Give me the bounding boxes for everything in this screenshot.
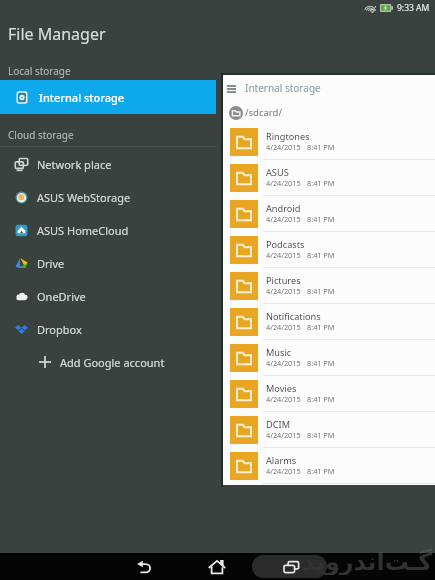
staticText: Internal storage: [245, 81, 321, 95]
staticText: File Manager: [8, 23, 106, 45]
staticText: 4/24/2015: [266, 358, 301, 368]
staticText: 8:41 PM: [307, 214, 335, 224]
staticText: 8:41 PM: [307, 322, 335, 332]
staticText: 8:41 PM: [307, 394, 335, 404]
staticText: 4/24/2015: [266, 394, 301, 404]
staticText: OneDrive: [37, 289, 86, 304]
button[interactable]: ASUS WebStorage: [0, 180, 223, 214]
staticText: Pictures: [266, 274, 301, 287]
staticText: 4/24/2015: [266, 250, 301, 260]
staticText: Network place: [37, 157, 112, 172]
button[interactable]: Add Google account: [0, 345, 223, 379]
staticText: 9:33 AM: [397, 2, 430, 14]
button[interactable]: Podcasts: [223, 232, 435, 268]
staticText: /sdcard/: [245, 106, 282, 119]
staticText: Notifications: [266, 310, 321, 323]
staticText: 8:41 PM: [307, 250, 335, 260]
button[interactable]: Notifications: [223, 304, 435, 340]
staticText: 8:41 PM: [307, 358, 335, 368]
staticText: 4/24/2015: [266, 286, 301, 296]
button[interactable]: Back: [126, 553, 162, 580]
staticText: ASUS HomeCloud: [37, 223, 129, 238]
staticText: ASUS: [266, 166, 289, 179]
button[interactable]: Drive: [0, 246, 223, 280]
button[interactable]: Network place: [0, 147, 223, 181]
button[interactable]: Ringtones: [223, 124, 435, 160]
staticText: Ringtones: [266, 130, 310, 143]
button[interactable]: Internal storage: [0, 80, 216, 114]
staticText: 4/24/2015: [266, 322, 301, 332]
staticText: DCIM: [266, 418, 290, 431]
button[interactable]: Android: [223, 196, 435, 232]
staticText: 4/24/2015: [266, 142, 301, 152]
button[interactable]: Recent apps: [273, 553, 309, 580]
staticText: Local storage: [8, 64, 71, 78]
staticText: 4/24/2015: [266, 178, 301, 188]
staticText: Music: [266, 346, 292, 359]
staticText: Podcasts: [266, 238, 305, 251]
button[interactable]: Movies: [223, 376, 435, 412]
staticText: Cloud storage: [8, 128, 74, 142]
button[interactable]: Music: [223, 340, 435, 376]
staticText: Movies: [266, 382, 297, 395]
staticText: Dropbox: [37, 322, 82, 337]
button[interactable]: OneDrive: [0, 279, 223, 313]
staticText: گـت‌اندروید: [302, 553, 433, 575]
button[interactable]: Home: [199, 553, 235, 580]
staticText: Android: [266, 202, 301, 215]
staticText: Internal storage: [39, 90, 125, 105]
staticText: Add Google account: [60, 355, 165, 370]
staticText: Alarms: [266, 454, 297, 467]
staticText: 4/24/2015: [266, 214, 301, 224]
button[interactable]: Menu: [223, 80, 240, 97]
staticText: 8:41 PM: [307, 430, 335, 440]
staticText: گـت‌اندروید: [302, 548, 433, 553]
staticText: 8:41 PM: [307, 142, 335, 152]
staticText: 4/24/2015: [266, 430, 301, 440]
staticText: Drive: [37, 256, 65, 271]
staticText: 8:41 PM: [307, 466, 335, 476]
staticText: 8:41 PM: [307, 286, 335, 296]
button[interactable]: Dropbox: [0, 312, 223, 346]
button[interactable]: ASUS: [223, 160, 435, 196]
button[interactable]: Pictures: [223, 268, 435, 304]
staticText: 8:41 PM: [307, 178, 335, 188]
button[interactable]: DCIM: [223, 412, 435, 448]
button[interactable]: Alarms: [223, 448, 435, 484]
staticText: ASUS WebStorage: [37, 190, 131, 205]
staticText: 4/24/2015: [266, 466, 301, 476]
button[interactable]: ASUS HomeCloud: [0, 213, 223, 247]
